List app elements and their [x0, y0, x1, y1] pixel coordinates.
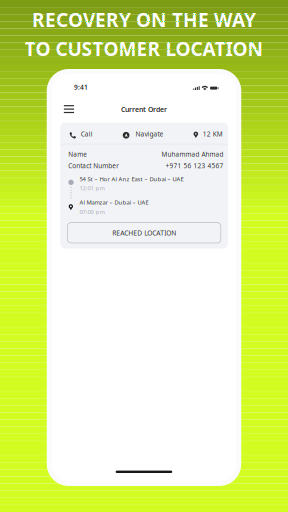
staticText: Name [68, 150, 87, 159]
staticText: 9:41 [74, 83, 88, 92]
staticText: 12 KM [203, 130, 223, 138]
staticText: Al Mamzar – Dubai – UAE [79, 198, 148, 206]
staticText: 07:00 pm [79, 208, 104, 216]
staticText: RECOVERY ON THE WAY [32, 6, 256, 32]
staticText: Contact Number [68, 161, 119, 170]
button[interactable]: Menu [64, 105, 74, 113]
staticText: Navigate [136, 130, 164, 138]
staticText: Call [81, 130, 93, 138]
button[interactable]: REACHED LOCATION [67, 223, 221, 243]
staticText: 54 St – Hor Al Anz East – Dubai – UAE [79, 175, 183, 183]
staticText: +971 56 123 4567 [166, 161, 224, 170]
staticText: REACHED LOCATION [112, 228, 176, 237]
staticText: Muhammad Ahmad [162, 150, 224, 159]
staticText: TO CUSTOMER LOCATION [24, 35, 263, 61]
staticText: 12:01 pm [79, 184, 104, 192]
staticText: Current Order [121, 105, 167, 114]
